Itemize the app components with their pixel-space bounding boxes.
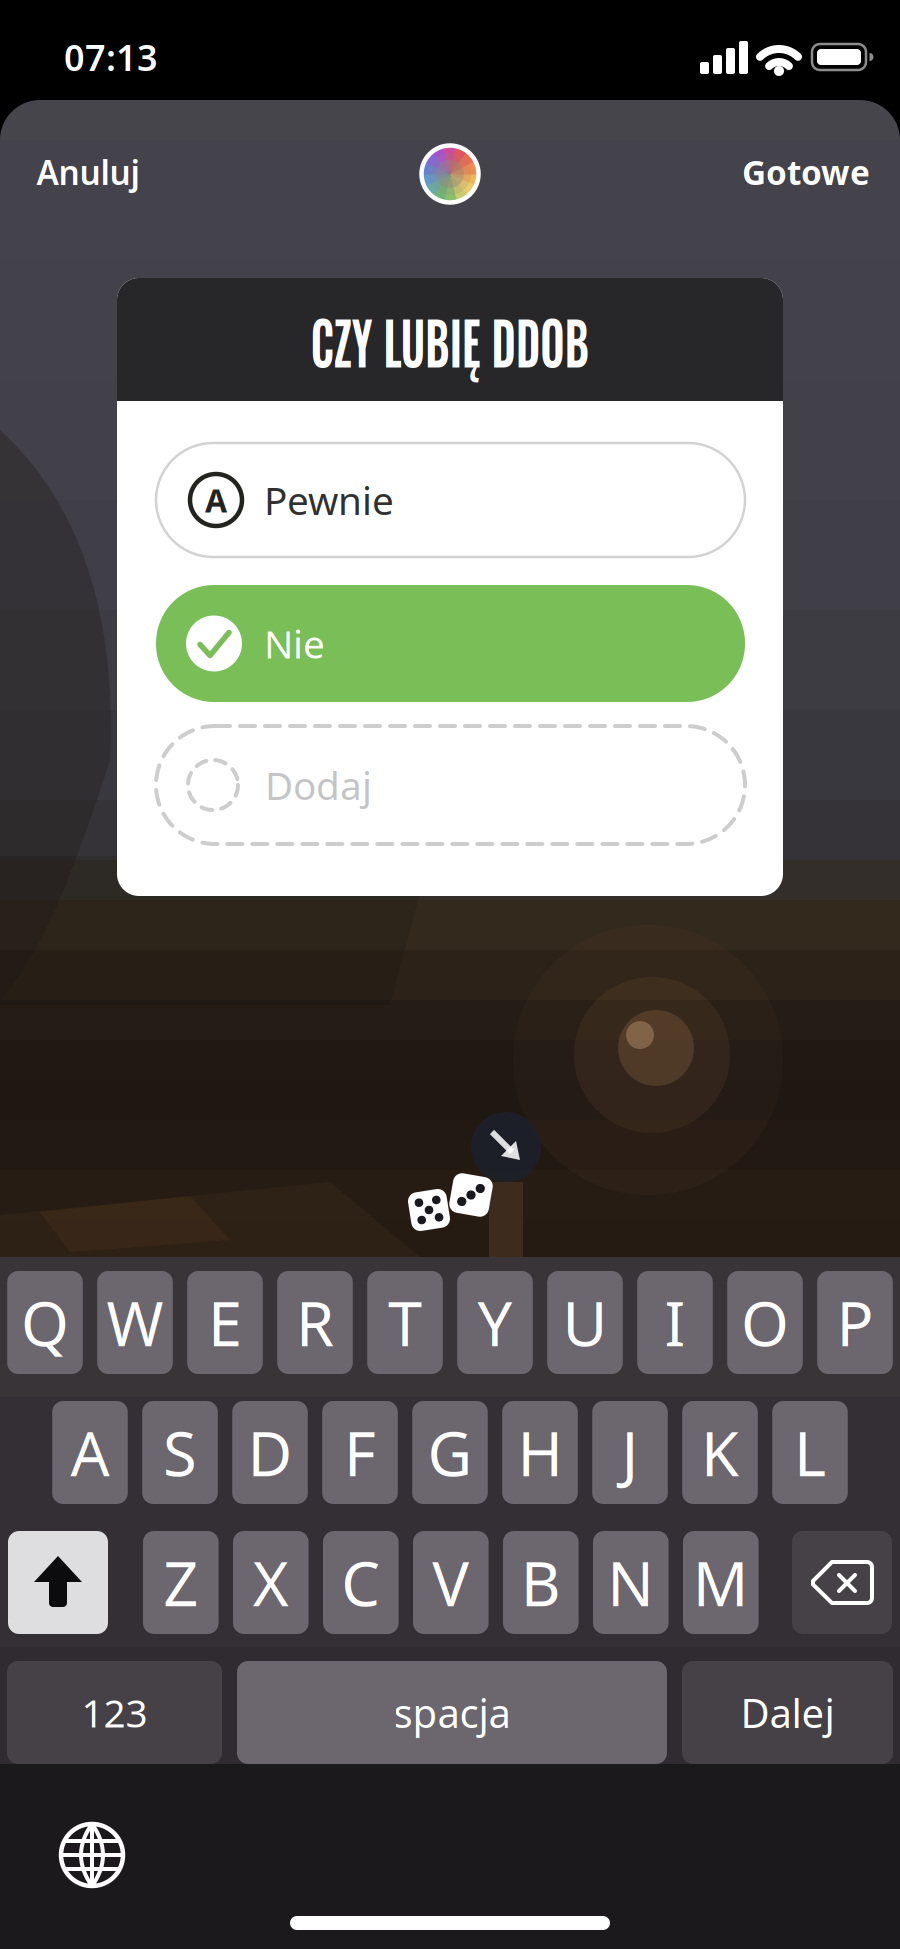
button[interactable]: A: [0, 0, 900, 1949]
button[interactable]: [451, 1175, 491, 1215]
button[interactable]: U: [547, 1271, 623, 1374]
button[interactable]: E: [187, 1271, 263, 1374]
staticText: V: [432, 1542, 469, 1623]
button[interactable]: N: [593, 1531, 669, 1634]
button[interactable]: Nie: [0, 0, 900, 1949]
button[interactable]: R: [277, 1271, 353, 1374]
button[interactable]: K: [682, 1401, 758, 1504]
button[interactable]: H: [502, 1401, 578, 1504]
button[interactable]: [792, 1531, 892, 1634]
button[interactable]: W: [97, 1271, 173, 1374]
button[interactable]: C: [323, 1531, 399, 1634]
staticText: Dalej: [740, 1686, 834, 1739]
staticText: Z: [163, 1542, 198, 1623]
staticText: 123: [81, 1687, 147, 1738]
button[interactable]: Anuluj: [36, 150, 139, 194]
staticText: J: [621, 1412, 638, 1493]
staticText: spacja: [393, 1686, 510, 1739]
button[interactable]: X: [233, 1531, 309, 1634]
staticText: CZY LUBIĘ DDOB: [256, 297, 643, 384]
staticText: Nie: [264, 618, 325, 669]
staticText: Pewnie: [264, 474, 394, 526]
button[interactable]: D: [232, 1401, 308, 1504]
staticText: K: [701, 1412, 739, 1493]
staticText: X: [253, 1542, 289, 1623]
button[interactable]: B: [503, 1531, 579, 1634]
button[interactable]: Dalej: [682, 1661, 893, 1764]
staticText: Q: [21, 1282, 69, 1363]
staticText: Gotowe: [742, 150, 870, 194]
staticText: S: [163, 1412, 197, 1493]
button[interactable]: L: [772, 1401, 848, 1504]
button[interactable]: J: [592, 1401, 668, 1504]
button[interactable]: F: [322, 1401, 398, 1504]
button[interactable]: I: [637, 1271, 713, 1374]
button[interactable]: Dodaj: [0, 0, 900, 1949]
staticText: Y: [477, 1282, 512, 1363]
staticText: Dodaj: [265, 759, 372, 811]
staticText: Anuluj: [36, 150, 139, 194]
staticText: E: [208, 1282, 242, 1363]
staticText: I: [664, 1282, 685, 1363]
button[interactable]: Y: [457, 1271, 533, 1374]
staticText: F: [344, 1412, 376, 1493]
button[interactable]: [57, 1820, 127, 1890]
button[interactable]: M: [683, 1531, 759, 1634]
staticText: L: [794, 1412, 826, 1493]
button[interactable]: Q: [7, 1271, 83, 1374]
staticText: N: [607, 1542, 654, 1623]
staticText: U: [562, 1282, 607, 1363]
button[interactable]: 123: [7, 1661, 222, 1764]
button[interactable]: A: [52, 1401, 128, 1504]
button[interactable]: spacja: [237, 1661, 667, 1764]
staticText: O: [741, 1282, 789, 1363]
staticText: C: [341, 1542, 380, 1623]
staticText: H: [517, 1412, 562, 1493]
staticText: A: [70, 1412, 109, 1493]
button[interactable]: [419, 143, 481, 205]
button[interactable]: G: [412, 1401, 488, 1504]
staticText: G: [427, 1412, 472, 1493]
button[interactable]: Z: [143, 1531, 219, 1634]
staticText: R: [296, 1282, 334, 1363]
staticText: T: [388, 1282, 422, 1363]
staticText: P: [836, 1282, 873, 1363]
button[interactable]: T: [367, 1271, 443, 1374]
staticText: W: [106, 1282, 163, 1363]
button[interactable]: S: [142, 1401, 218, 1504]
button[interactable]: V: [413, 1531, 489, 1634]
button[interactable]: [409, 1190, 448, 1229]
button[interactable]: O: [727, 1271, 803, 1374]
staticText: D: [247, 1412, 292, 1493]
staticText: A: [205, 479, 227, 521]
staticText: M: [693, 1542, 749, 1623]
staticText: B: [521, 1542, 561, 1623]
button[interactable]: Gotowe: [742, 150, 870, 194]
staticText: 07:13: [64, 33, 158, 81]
button[interactable]: [8, 1531, 108, 1634]
button[interactable]: P: [817, 1271, 893, 1374]
